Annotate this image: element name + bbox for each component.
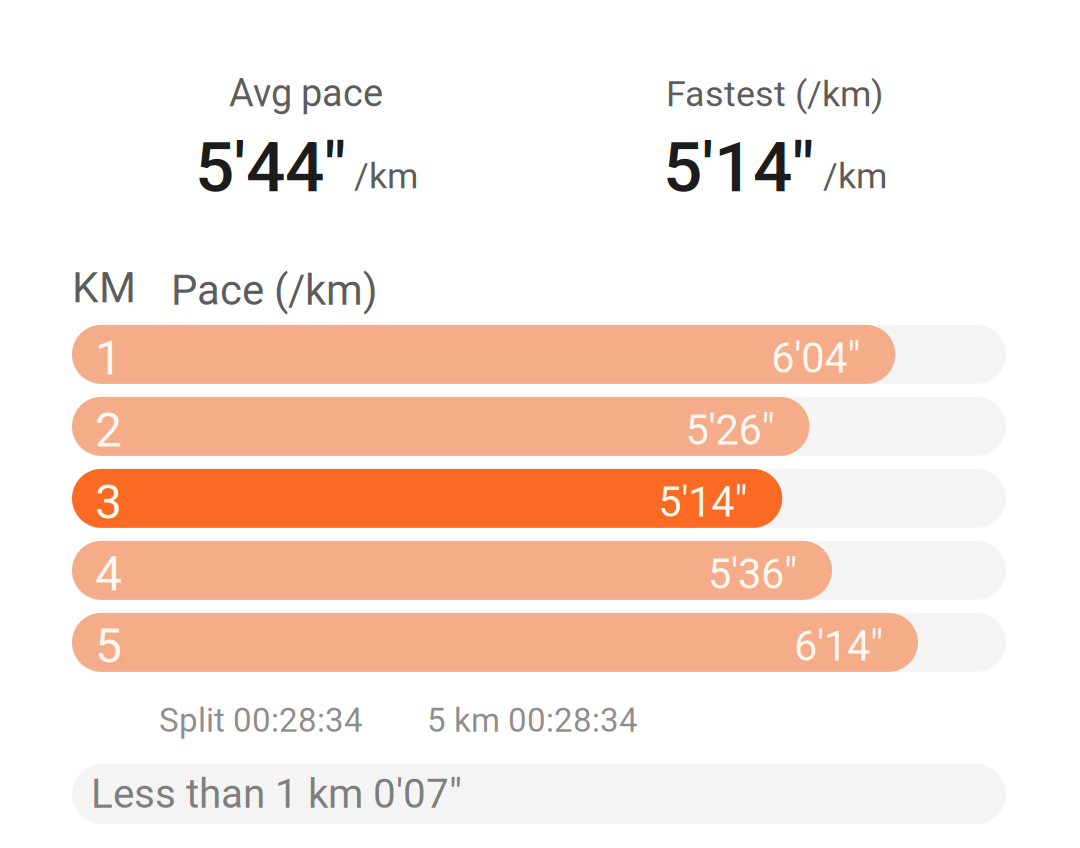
- staticText: 3: [95, 474, 122, 530]
- button[interactable]: 3: [72, 470, 1006, 529]
- staticText: /km: [354, 155, 418, 197]
- staticText: 5: [95, 618, 122, 674]
- staticText: KM: [72, 263, 136, 313]
- staticText: 5'36": [708, 550, 797, 599]
- staticText: 5'44": [195, 127, 346, 208]
- button[interactable]: Less than 1 km 0'07": [72, 764, 1006, 824]
- staticText: 4: [95, 546, 122, 602]
- staticText: Pace (/km): [171, 266, 378, 315]
- button[interactable]: 1: [72, 326, 1006, 385]
- staticText: 5 km 00:28:34: [427, 701, 638, 740]
- staticText: 6'04": [771, 334, 860, 383]
- staticText: Avg pace: [229, 71, 383, 115]
- staticText: 2: [95, 402, 122, 458]
- staticText: 5'26": [685, 406, 774, 455]
- staticText: Less than 1 km 0'07": [91, 770, 462, 818]
- staticText: 1: [95, 330, 122, 386]
- staticText: Fastest (/km): [666, 73, 883, 115]
- staticText: 5'14": [663, 127, 814, 208]
- staticText: 5'14": [658, 478, 747, 527]
- button[interactable]: 5: [72, 614, 1006, 673]
- staticText: /km: [823, 155, 887, 197]
- button[interactable]: 2: [72, 398, 1006, 457]
- button[interactable]: 4: [72, 542, 1006, 601]
- staticText: Split 00:28:34: [159, 701, 363, 740]
- staticText: 6'14": [794, 622, 883, 671]
